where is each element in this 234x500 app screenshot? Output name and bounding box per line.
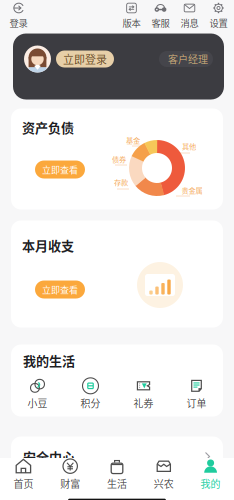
button[interactable]: 立即查看 <box>35 280 85 298</box>
staticText: 立即登录 <box>63 51 107 67</box>
staticText: 其他 <box>182 141 196 151</box>
staticText: 财富 <box>60 476 80 491</box>
staticText: 礼券 <box>133 396 153 410</box>
button[interactable]: 礼券 <box>117 378 170 410</box>
staticText: 贵金属 <box>181 185 202 195</box>
staticText: 我的 <box>201 476 221 491</box>
staticText: 存款 <box>114 177 128 187</box>
button[interactable]: 财富 <box>47 458 94 491</box>
button[interactable]: 首页 <box>0 458 47 491</box>
button[interactable]: 立即登录 <box>56 50 114 67</box>
button[interactable]: 小豆 <box>11 378 64 410</box>
staticText: 立即查看 <box>42 163 78 176</box>
button[interactable]: 兴农 <box>140 458 187 491</box>
button[interactable]: 积分 <box>64 378 117 410</box>
button[interactable]: 消息 <box>175 2 204 29</box>
button[interactable]: 登录 <box>4 2 33 29</box>
staticText: 立即查看 <box>42 283 78 296</box>
staticText: 订单 <box>186 396 206 410</box>
staticText: 生活 <box>107 476 127 491</box>
staticText: 首页 <box>13 476 33 491</box>
staticText: 安全中心 <box>23 447 75 466</box>
staticText: 客户经理 <box>168 52 208 66</box>
staticText: 本月收支 <box>22 235 74 254</box>
button[interactable]: 客户经理 <box>159 51 213 67</box>
button[interactable]: 立即查看 <box>35 160 85 178</box>
staticText: 设置 <box>209 16 227 29</box>
staticText: 债券 <box>112 154 126 164</box>
button[interactable]: 安全中心 <box>11 436 223 476</box>
button[interactable]: 客服 <box>146 2 175 29</box>
staticText: 资产负债 <box>22 117 74 136</box>
staticText: 基金 <box>126 135 140 145</box>
staticText: 登录 <box>9 16 27 29</box>
staticText: 小豆 <box>27 396 47 410</box>
staticText: 我的生活 <box>23 351 75 370</box>
button[interactable]: 我的 <box>187 458 234 491</box>
button[interactable]: 生活 <box>94 458 140 491</box>
staticText: 兴农 <box>154 476 174 491</box>
staticText: 积分 <box>80 396 100 410</box>
button[interactable]: 版本 <box>117 2 146 29</box>
staticText: 消息 <box>180 16 198 29</box>
staticText: 版本 <box>122 16 140 29</box>
button[interactable]: 订单 <box>170 378 223 410</box>
staticText: 客服 <box>151 16 169 29</box>
button[interactable]: 设置 <box>204 2 233 29</box>
